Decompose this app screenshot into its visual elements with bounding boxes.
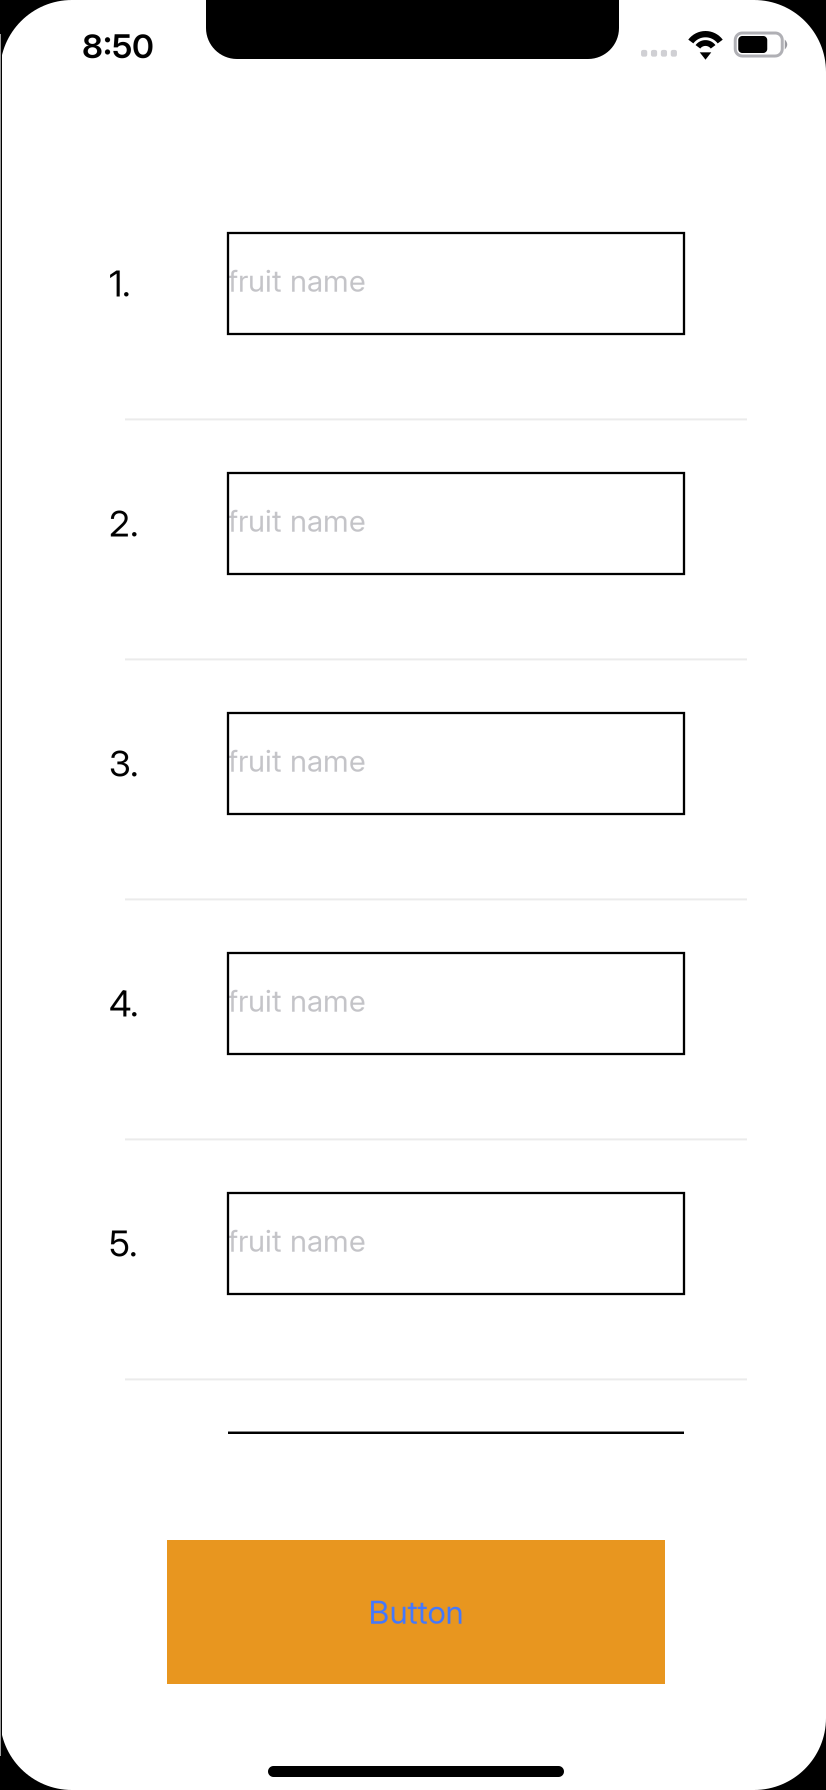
staticText: fruit name xyxy=(228,503,366,539)
staticText: fruit name xyxy=(228,1223,366,1259)
button[interactable]: Fruit name 5 xyxy=(228,1193,684,1294)
staticText: 8:50 xyxy=(82,25,154,66)
button[interactable]: Button xyxy=(167,1540,665,1684)
staticText: Button xyxy=(368,1593,463,1631)
button[interactable]: Fruit name 4 xyxy=(228,953,684,1054)
button[interactable]: Fruit name 2 xyxy=(228,473,684,574)
staticText: 3. xyxy=(109,742,139,785)
staticText: 4. xyxy=(109,982,139,1025)
staticText: fruit name xyxy=(228,743,366,779)
button[interactable]: Fruit name 3 xyxy=(228,713,684,814)
staticText: fruit name xyxy=(228,263,366,299)
staticText: 2. xyxy=(109,502,139,545)
staticText: 5. xyxy=(109,1222,138,1265)
staticText: 1. xyxy=(109,262,131,305)
button[interactable]: Fruit name 1 xyxy=(228,233,684,334)
staticText: fruit name xyxy=(228,983,366,1019)
